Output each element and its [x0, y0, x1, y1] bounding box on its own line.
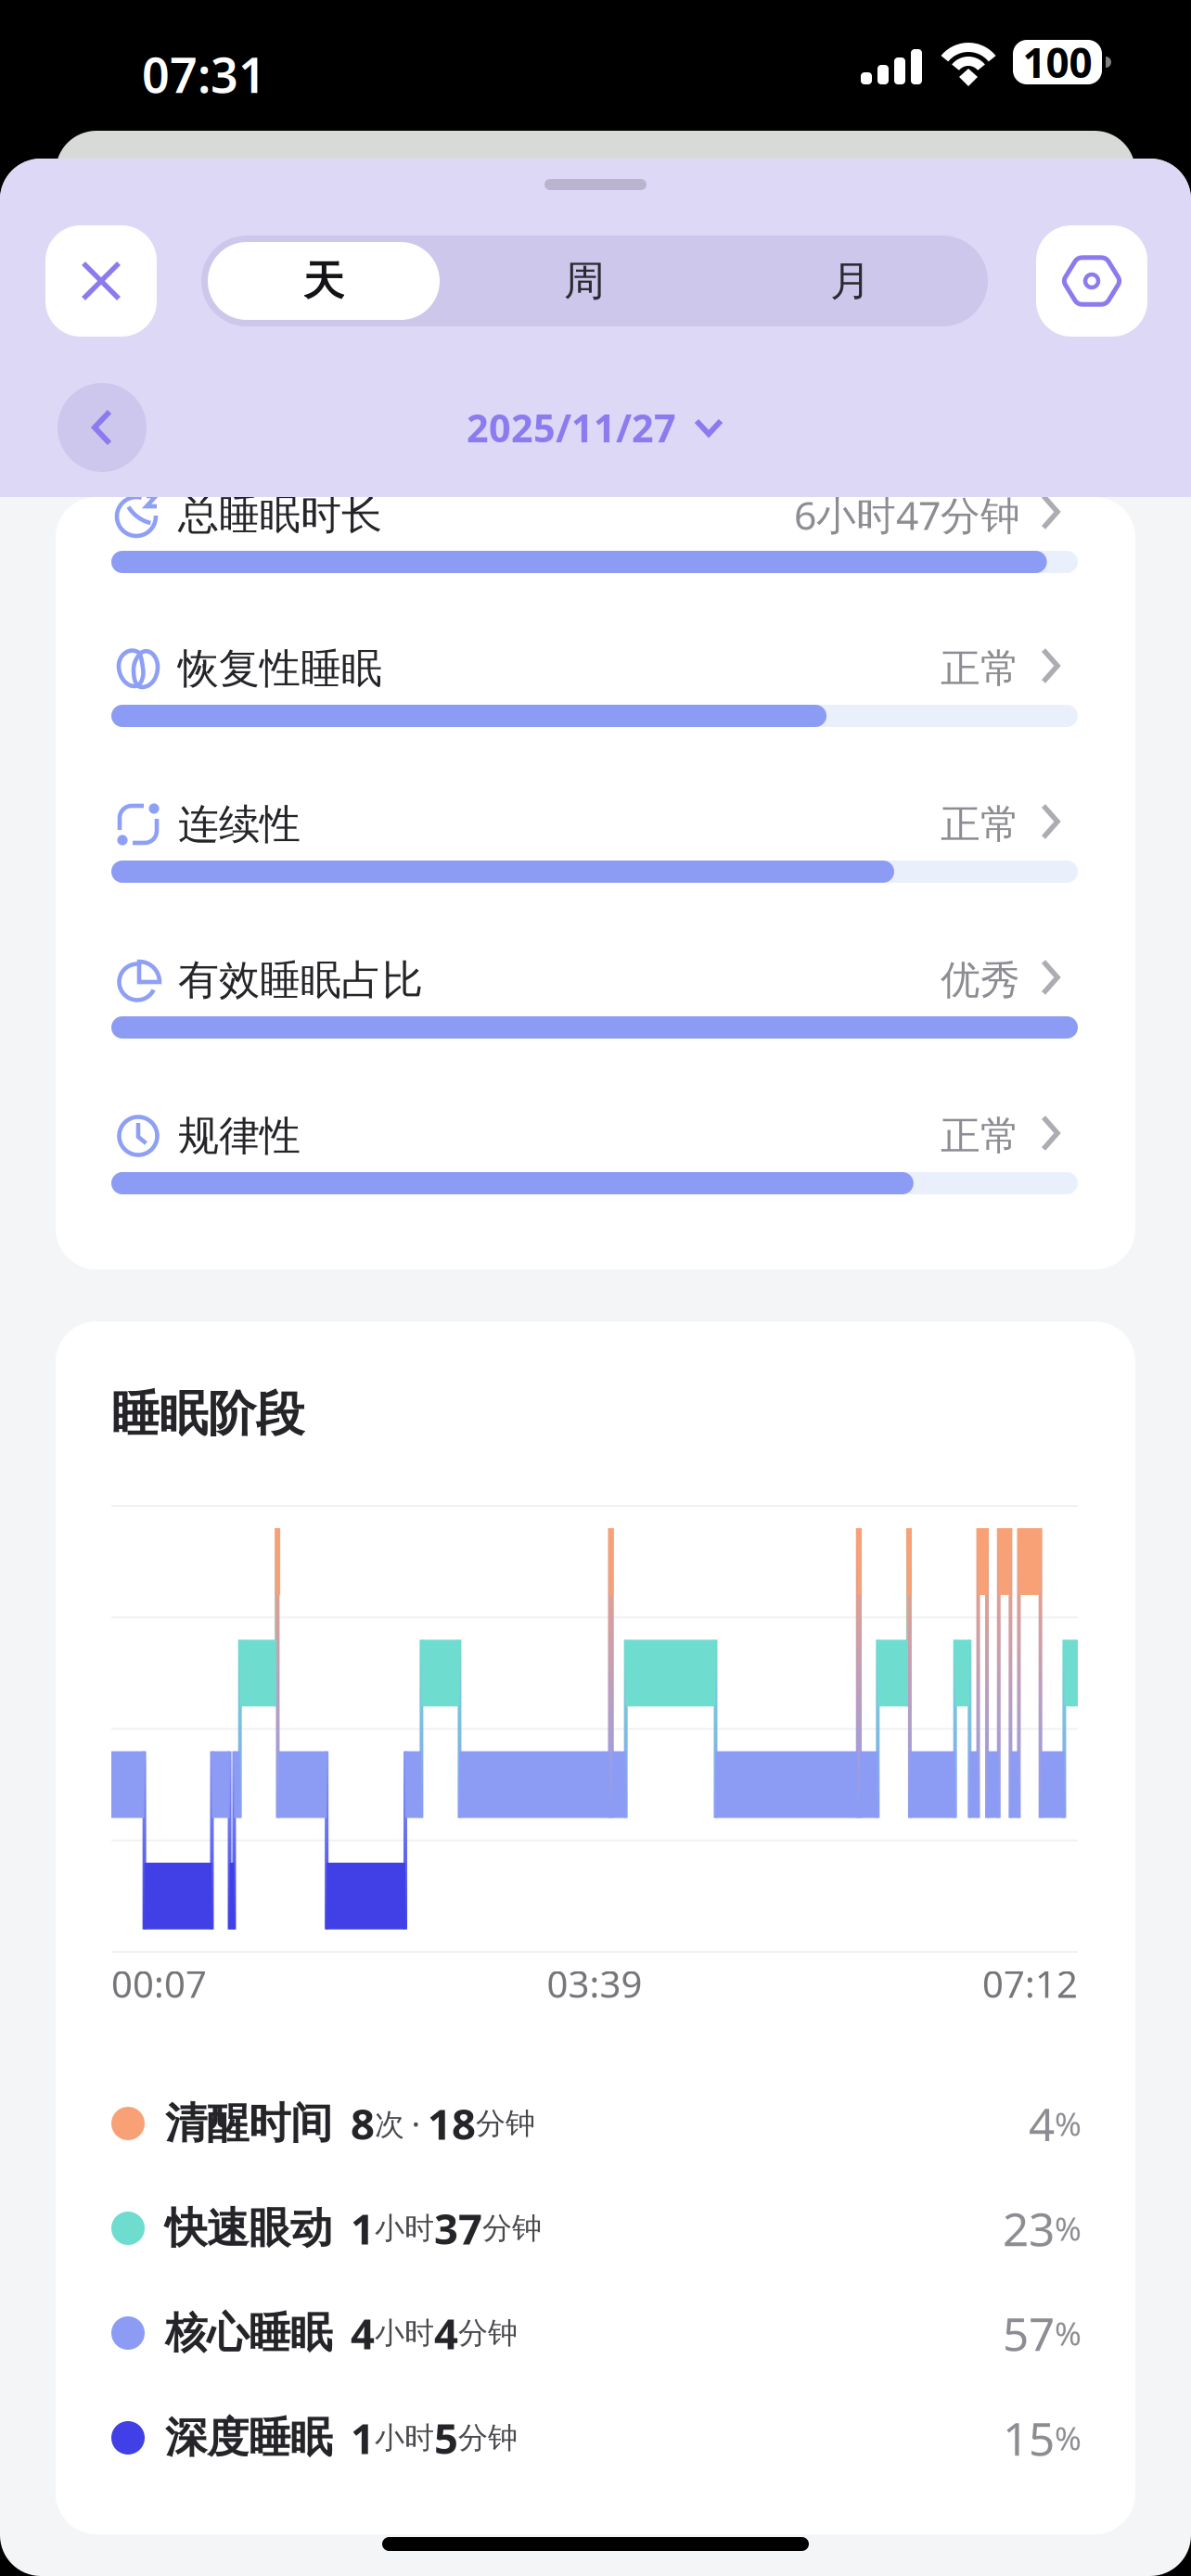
- staticText: 4: [1029, 2093, 1055, 2154]
- button[interactable]: 恢复性睡眠: [111, 641, 1078, 727]
- staticText: 23: [1003, 2198, 1055, 2259]
- button[interactable]: 周: [455, 242, 714, 320]
- staticText: %: [1055, 2417, 1082, 2459]
- staticText: 15: [1003, 2407, 1055, 2468]
- staticText: 1: [351, 2200, 375, 2256]
- staticText: 2025/11/27: [467, 402, 676, 453]
- staticText: 周: [564, 256, 605, 306]
- staticText: 小时: [375, 2210, 434, 2246]
- staticText: 恢复性睡眠: [178, 644, 382, 694]
- staticText: 07:31: [142, 42, 266, 106]
- staticText: 57: [1003, 2303, 1055, 2363]
- staticText: 5: [434, 2410, 458, 2466]
- staticText: 8: [351, 2096, 375, 2151]
- staticText: 清醒时间: [165, 2098, 332, 2149]
- staticText: 正常: [941, 800, 1020, 849]
- button[interactable]: 前一天: [58, 383, 147, 472]
- staticText: 正常: [941, 1112, 1020, 1160]
- staticText: 总睡眠时长: [178, 490, 382, 540]
- staticText: 100: [1023, 35, 1092, 89]
- staticText: 快速眼动: [165, 2202, 332, 2254]
- staticText: 07:12: [982, 1959, 1078, 2008]
- button[interactable]: 设置: [1036, 225, 1147, 337]
- staticText: %: [1055, 2102, 1082, 2145]
- button[interactable]: 天: [208, 242, 440, 320]
- staticText: 分钟: [482, 2210, 542, 2246]
- button[interactable]: 有效睡眠占比: [111, 952, 1078, 1039]
- button[interactable]: 月: [721, 242, 980, 320]
- staticText: 连续性: [178, 799, 301, 849]
- staticText: %: [1055, 2312, 1082, 2354]
- staticText: 小时: [375, 2420, 434, 2456]
- staticText: 37: [434, 2200, 482, 2256]
- button[interactable]: 关闭: [45, 225, 157, 337]
- staticText: 1: [351, 2410, 375, 2466]
- staticText: 分钟: [458, 2420, 518, 2456]
- staticText: 深度睡眠: [165, 2412, 332, 2464]
- staticText: 6小时47分钟: [794, 488, 1020, 541]
- staticText: 次 ·: [375, 2104, 428, 2143]
- staticText: 4: [351, 2305, 375, 2361]
- staticText: 03:39: [547, 1959, 642, 2008]
- staticText: 分钟: [476, 2105, 535, 2142]
- staticText: 核心睡眠: [165, 2307, 332, 2359]
- staticText: 正常: [941, 644, 1020, 693]
- staticText: %: [1055, 2207, 1082, 2250]
- staticText: 睡眠阶段: [111, 1385, 304, 1444]
- staticText: 4: [434, 2305, 458, 2361]
- staticText: 小时: [375, 2315, 434, 2351]
- button[interactable]: 规律性: [111, 1108, 1078, 1194]
- button[interactable]: 2025/11/27: [317, 383, 874, 472]
- staticText: 18: [428, 2096, 476, 2151]
- button[interactable]: 总睡眠时长: [111, 487, 1078, 573]
- staticText: 月: [830, 256, 871, 306]
- staticText: 有效睡眠占比: [178, 955, 423, 1005]
- staticText: 规律性: [178, 1111, 301, 1161]
- staticText: 优秀: [941, 956, 1020, 1004]
- button[interactable]: 连续性: [111, 797, 1078, 883]
- staticText: 分钟: [458, 2315, 518, 2351]
- staticText: 天: [303, 256, 344, 306]
- staticText: 00:07: [111, 1959, 207, 2008]
